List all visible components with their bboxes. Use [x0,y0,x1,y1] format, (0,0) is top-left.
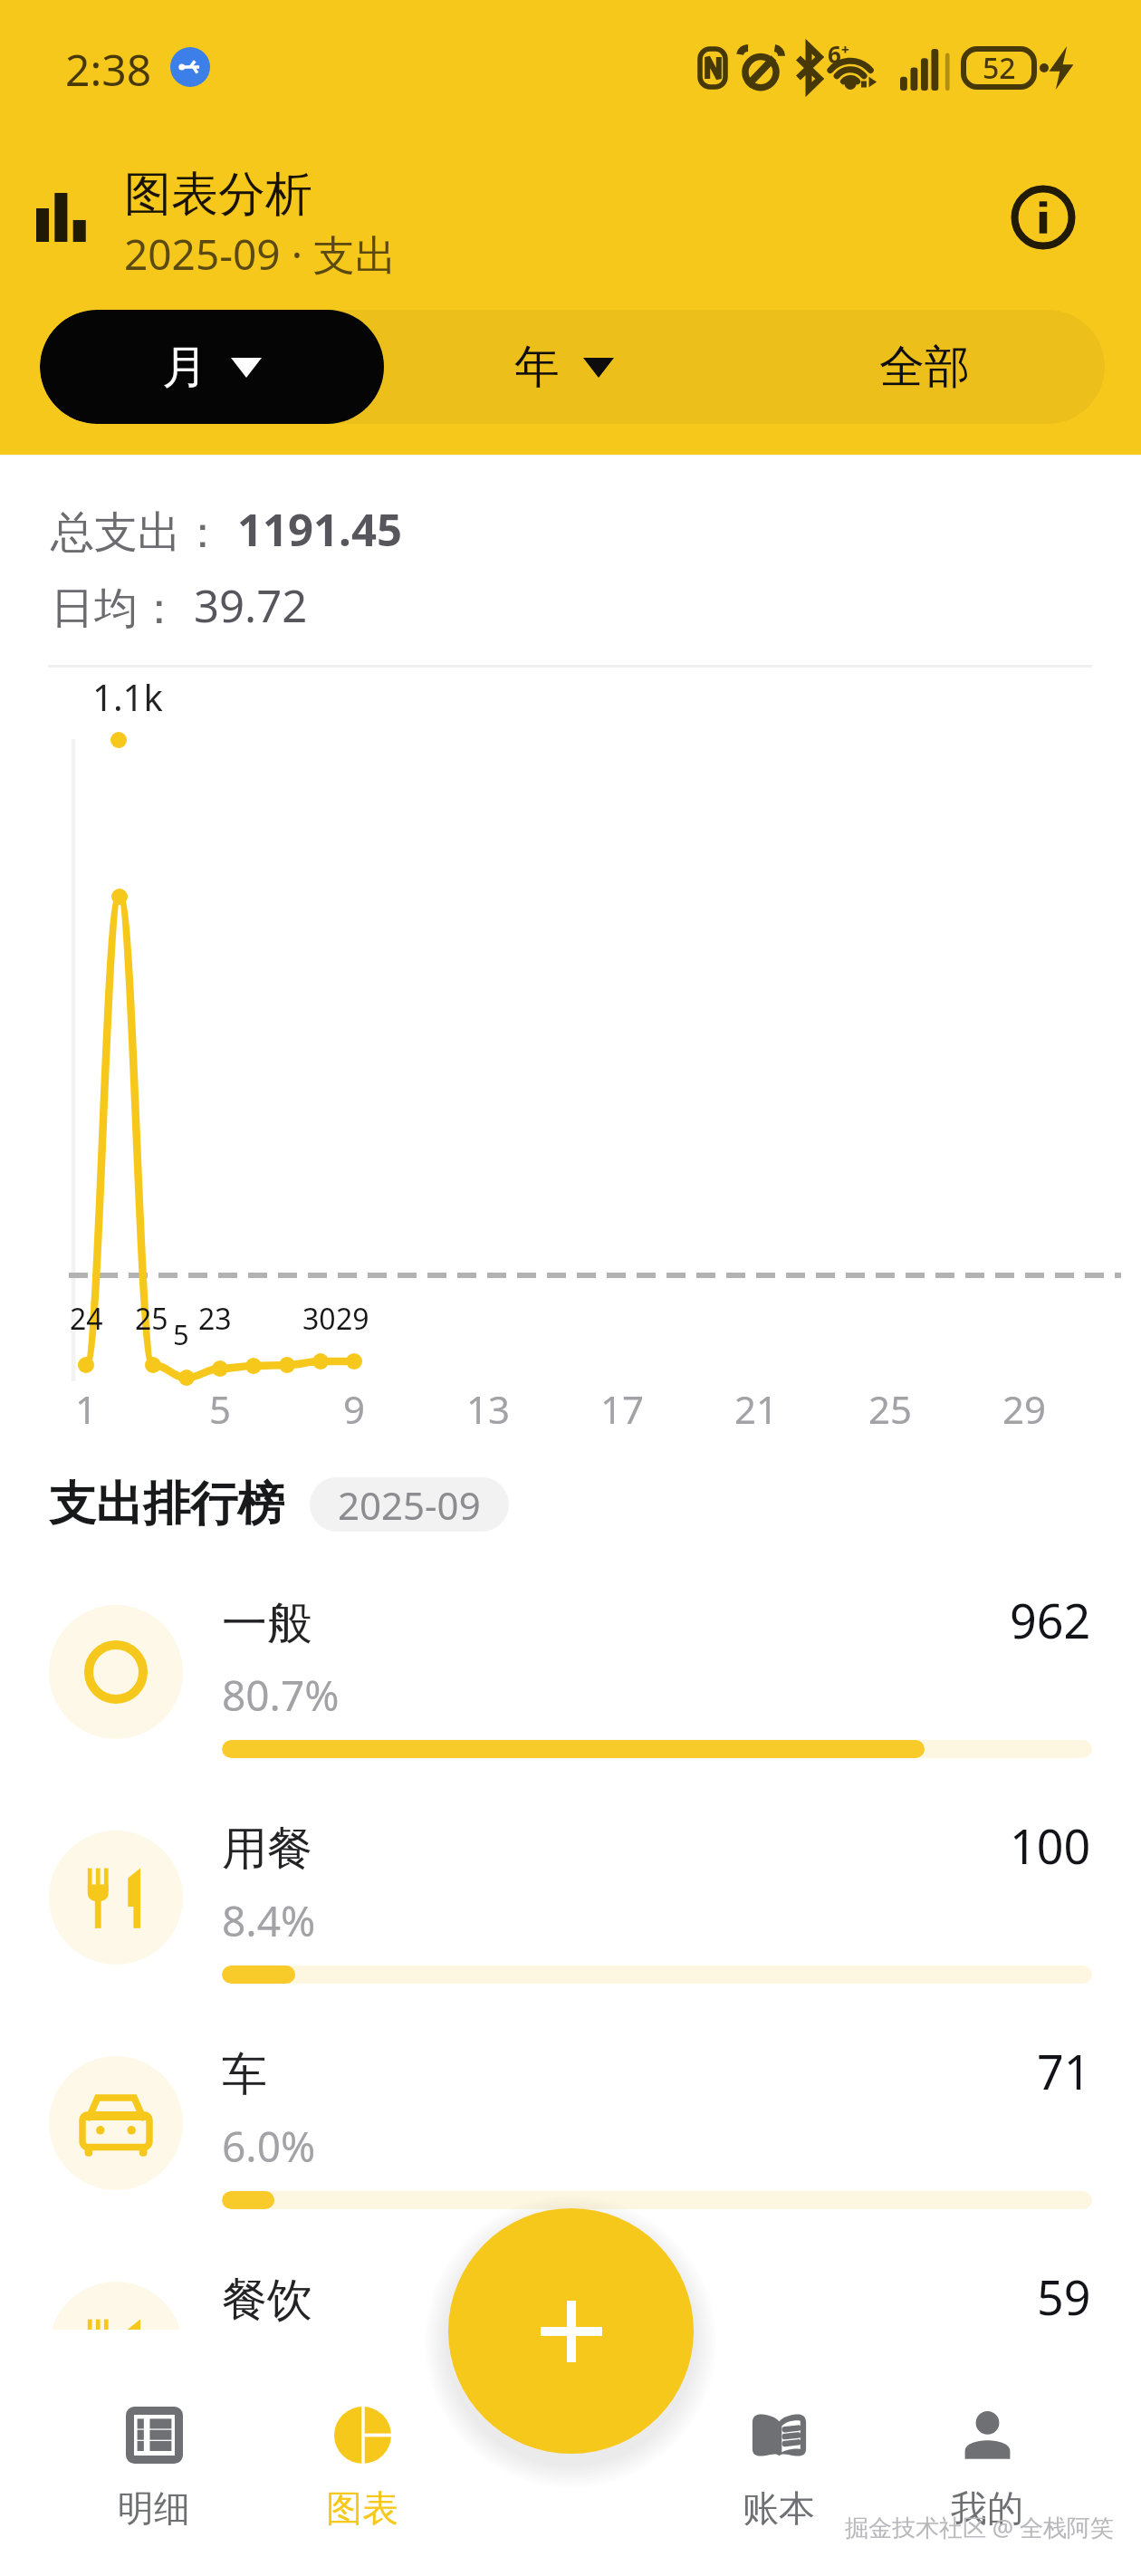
staticText: 52 [983,48,1016,88]
staticText: 25 [135,1299,168,1339]
staticText: 39.72 [194,575,308,636]
staticText: 掘金技术社区 @ 全栈阿笑 [845,2511,1114,2543]
staticText: 2025-09 [338,1479,481,1531]
staticText: 59 [1037,2264,1091,2329]
staticText: 用餐 [222,1821,312,1878]
staticText: 日均： [51,582,181,636]
staticText: 2025-09 · 支出 [124,226,397,283]
button[interactable]: 一般 [0,1587,1141,1812]
staticText: 9 [343,1383,366,1435]
staticText: 24 [70,1299,103,1339]
staticText: 餐饮 [222,2272,312,2329]
staticText: 30 [302,1299,336,1339]
staticText: 2:38 [65,40,152,99]
staticText: 25 [868,1383,913,1435]
staticText: 一般 [222,1595,312,1652]
staticText: 13 [466,1383,511,1435]
staticText: 月 [162,339,207,396]
staticText: 8.4% [222,1892,316,1949]
staticText: 1191.45 [237,499,402,560]
staticText: 账本 [743,2485,815,2531]
staticText: 80.7% [222,1667,340,1724]
staticText: 全部 [879,339,970,396]
staticText: 1 [75,1383,98,1435]
button[interactable]: 全部 [744,310,1105,424]
staticText: 23 [198,1299,232,1339]
staticText: 图表 [326,2485,398,2531]
button[interactable]: 车 [0,2038,1141,2264]
staticText: 29 [336,1299,369,1339]
button[interactable]: 用餐 [0,1812,1141,2038]
staticText: 17 [600,1383,645,1435]
staticText: 6⁺ [828,38,850,70]
staticText: 年 [514,339,560,396]
staticText: 5 [209,1383,232,1435]
staticText: 总支出： [51,505,225,560]
staticText: 明细 [118,2485,190,2531]
staticText: 车 [222,2046,267,2103]
staticText: 我的 [951,2485,1023,2531]
staticText: 29 [1002,1383,1047,1435]
button[interactable]: Add [448,2208,694,2454]
staticText: 962 [1010,1588,1091,1652]
button[interactable]: 账本 [697,2407,860,2542]
button[interactable]: 餐饮 [0,2264,1141,2489]
staticText: 1.1k [92,672,163,721]
button[interactable]: 月 [40,310,384,424]
staticText: 21 [734,1383,779,1435]
button[interactable]: 我的 [906,2407,1069,2542]
button[interactable]: 明细 [72,2407,235,2542]
staticText: 71 [1037,2039,1091,2103]
button[interactable]: Info [1000,174,1087,261]
staticText: 100 [1010,1813,1091,1878]
staticText: 支出排行榜 [49,1475,284,1534]
staticText: 6.0% [222,2118,316,2175]
button[interactable]: 年 [384,310,744,424]
button[interactable]: 图表 [281,2407,444,2542]
staticText: 5 [173,1315,189,1353]
staticText: 图表分析 [124,165,312,225]
